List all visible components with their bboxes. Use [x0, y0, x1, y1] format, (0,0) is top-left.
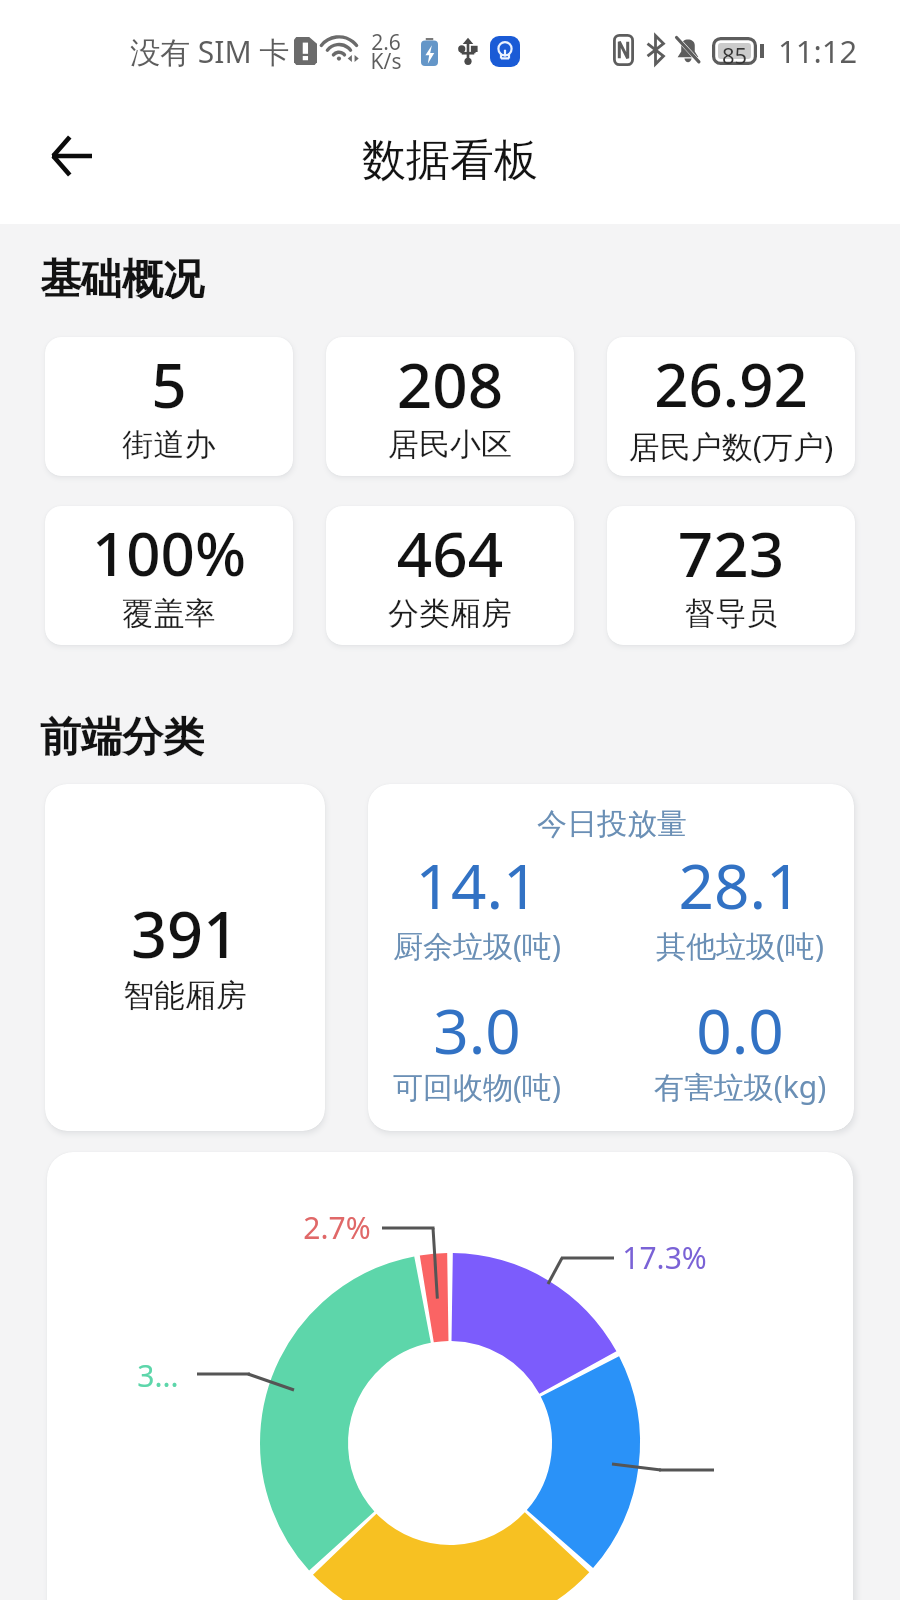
staticText: 街道办 [45, 425, 293, 464]
staticText: 分类厢房 [326, 594, 574, 633]
staticText: 没有 SIM 卡 [130, 31, 290, 72]
staticText: 可回收物(吨) [368, 1066, 592, 1107]
staticText: 厨余垃圾(吨) [368, 925, 592, 966]
staticText: 723 [607, 511, 855, 595]
button[interactable]: 723 [607, 506, 855, 645]
button[interactable]: 2.7% [47, 1152, 853, 1600]
button[interactable]: Back [40, 125, 102, 187]
staticText: 28.1 [625, 843, 854, 927]
staticText: 今日投放量 [369, 805, 854, 843]
staticText: 85 [712, 40, 757, 68]
staticText: 100% [45, 512, 293, 594]
staticText: 14.1 [368, 843, 592, 927]
staticText: 数据看板 [0, 133, 900, 188]
button[interactable]: 391 [45, 784, 325, 1131]
button[interactable]: 100% [45, 506, 293, 645]
staticText: 2.7% [303, 1207, 371, 1248]
staticText: 3... [137, 1355, 179, 1396]
staticText: 26.92 [607, 343, 855, 425]
button[interactable]: 今日投放量 [368, 784, 854, 1131]
staticText: 0.0 [625, 988, 854, 1072]
staticText: 居民户数(万户) [607, 425, 855, 467]
button[interactable]: 464 [326, 506, 574, 645]
staticText: 督导员 [607, 594, 855, 633]
staticText: 3.0 [368, 988, 592, 1072]
button[interactable]: 208 [326, 337, 574, 476]
staticText: 5 [45, 342, 293, 426]
staticText: 464 [326, 511, 574, 595]
staticText: 17.3% [622, 1237, 707, 1278]
staticText: K/s [366, 47, 406, 76]
staticText: 有害垃圾(kg) [625, 1066, 854, 1107]
button[interactable]: 26.92 [607, 337, 855, 476]
staticText: 391 [45, 891, 325, 977]
staticText: 智能厢房 [45, 976, 325, 1015]
staticText: 基础概况 [40, 254, 900, 306]
staticText: 居民小区 [326, 425, 574, 464]
staticText: 11:12 [778, 30, 858, 72]
button[interactable]: 5 [45, 337, 293, 476]
staticText: 208 [326, 342, 574, 426]
staticText: 覆盖率 [45, 594, 293, 633]
staticText: 前端分类 [40, 712, 900, 764]
staticText: 2.6 [366, 28, 406, 57]
staticText: 其他垃圾(吨) [625, 925, 854, 966]
